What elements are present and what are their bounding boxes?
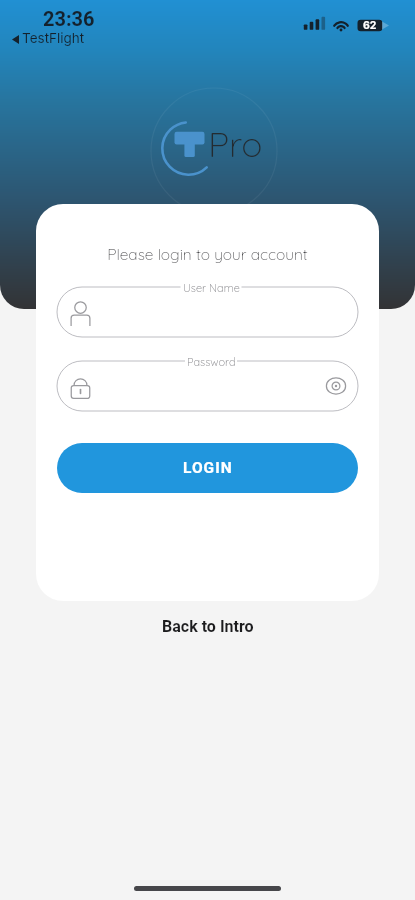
staticText: Pro xyxy=(208,121,263,165)
staticText: 62 xyxy=(363,19,377,32)
staticText: Back to Intro xyxy=(162,617,254,636)
button[interactable]: Show password xyxy=(322,373,348,399)
staticText: TestFlight xyxy=(22,30,85,46)
button[interactable]: Back to Intro xyxy=(148,612,268,641)
staticText: LOGIN xyxy=(183,459,233,477)
button[interactable]: User Name xyxy=(57,287,358,337)
button[interactable]: Show password xyxy=(57,361,358,411)
staticText: User Name xyxy=(183,281,240,295)
button[interactable]: LOGIN xyxy=(57,443,358,493)
staticText: Password xyxy=(187,355,236,369)
staticText: Please login to your account xyxy=(36,244,379,263)
staticText: 23:36 xyxy=(43,7,95,30)
